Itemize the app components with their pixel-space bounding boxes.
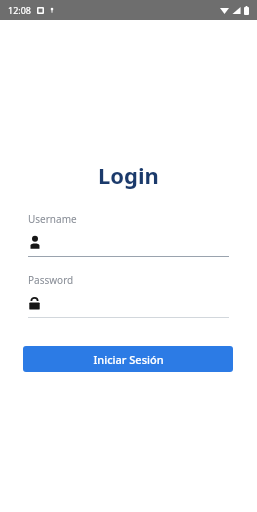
button[interactable]: Password (28, 273, 229, 318)
staticText: Login (98, 160, 159, 190)
staticText: Username (28, 212, 77, 226)
button[interactable]: Iniciar Sesión (23, 346, 233, 372)
staticText: Iniciar Sesión (93, 352, 164, 367)
staticText: 12:08 (8, 4, 32, 16)
staticText: Password (28, 273, 74, 287)
button[interactable]: Username (28, 212, 229, 257)
